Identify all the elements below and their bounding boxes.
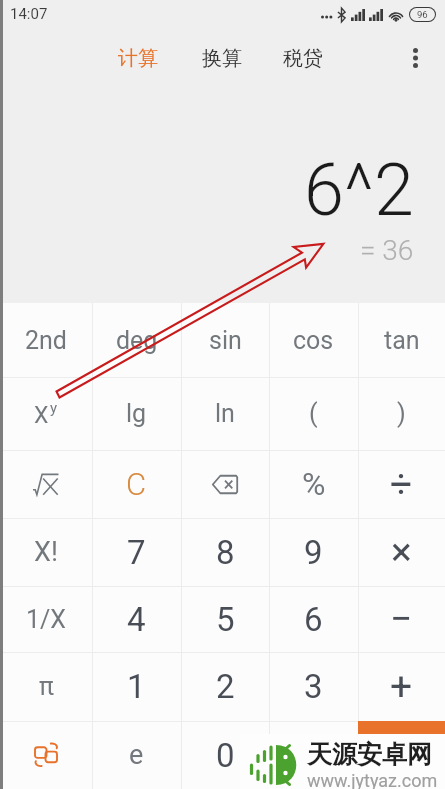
staticText: 7 — [127, 533, 146, 572]
staticText: × — [391, 529, 412, 575]
button[interactable]: 3 — [269, 652, 358, 721]
button[interactable]: cos — [269, 303, 358, 377]
staticText: 1/X — [26, 605, 67, 634]
button[interactable]: ÷ — [358, 450, 445, 518]
staticText: − — [390, 596, 413, 642]
button[interactable]: 换算 — [195, 37, 249, 80]
staticText: 税贷 — [283, 46, 323, 71]
staticText: y — [50, 399, 58, 417]
staticText: π — [39, 672, 54, 701]
staticText: 1 — [127, 667, 146, 706]
button[interactable]: tan — [358, 303, 445, 377]
staticText: 2 — [216, 667, 235, 706]
staticText: 6 — [304, 600, 323, 639]
button[interactable]: X! — [0, 518, 92, 586]
button[interactable]: 1 — [92, 652, 181, 721]
button[interactable]: 1/X — [0, 586, 92, 652]
staticText: tan — [384, 326, 420, 355]
button[interactable]: π — [0, 652, 92, 721]
button[interactable]: e — [92, 721, 181, 789]
staticText: 6^2 — [304, 148, 414, 232]
button[interactable]: 税贷 — [276, 37, 330, 80]
button[interactable]: 2nd — [0, 303, 92, 377]
button[interactable]: More options — [391, 34, 439, 82]
staticText: 8 — [216, 533, 235, 572]
button[interactable]: 8 — [181, 518, 269, 586]
staticText: X! — [34, 536, 58, 568]
button[interactable]: 9 — [269, 518, 358, 586]
button[interactable]: ln — [181, 377, 269, 450]
button[interactable]: lg — [92, 377, 181, 450]
staticText: www.jytyaz.com — [307, 770, 438, 789]
button[interactable]: + — [358, 652, 445, 721]
staticText: 3 — [304, 667, 323, 706]
staticText: e — [129, 739, 144, 771]
staticText: ÷ — [390, 461, 413, 507]
staticText: cos — [293, 326, 334, 355]
button[interactable]: 7 — [92, 518, 181, 586]
staticText: 9 — [304, 533, 323, 572]
button[interactable]: sin — [181, 303, 269, 377]
staticText: % — [302, 465, 326, 503]
button[interactable]: . — [269, 721, 358, 789]
button[interactable]: ( — [269, 377, 358, 450]
button[interactable]: × — [358, 518, 445, 586]
staticText: = — [393, 736, 411, 774]
button[interactable]: 5 — [181, 586, 269, 652]
button[interactable]: = — [358, 721, 445, 789]
button[interactable]: deg — [92, 303, 181, 377]
button[interactable]: 计算 — [111, 37, 165, 80]
button[interactable]: ) — [358, 377, 445, 450]
staticText: + — [390, 664, 413, 710]
staticText: sin — [209, 326, 242, 355]
button[interactable]: X — [0, 377, 92, 450]
button[interactable]: % — [269, 450, 358, 518]
staticText: . — [309, 736, 318, 775]
staticText: ( — [309, 399, 318, 428]
staticText: 0 — [216, 736, 235, 775]
staticText: 5 — [216, 600, 235, 639]
button[interactable]: 4 — [92, 586, 181, 652]
staticText: 14:07 — [10, 5, 48, 23]
button[interactable]: 0 — [181, 721, 269, 789]
button[interactable] — [0, 721, 92, 789]
button[interactable]: − — [358, 586, 445, 652]
staticText: deg — [116, 326, 158, 355]
staticText: 换算 — [202, 46, 242, 71]
staticText: X — [34, 402, 49, 426]
staticText: C — [126, 466, 147, 502]
staticText: 天源安卓网 — [307, 739, 432, 770]
staticText: lg — [126, 399, 147, 428]
button[interactable]: C — [92, 450, 181, 518]
staticText: 计算 — [118, 46, 158, 71]
staticText: ln — [215, 399, 235, 428]
staticText: = 36 — [360, 234, 414, 267]
staticText: 2nd — [25, 326, 67, 355]
staticText: 4 — [127, 600, 146, 639]
button[interactable] — [181, 450, 269, 518]
staticText: 96 — [417, 9, 428, 20]
button[interactable]: 6 — [269, 586, 358, 652]
button[interactable]: 2 — [181, 652, 269, 721]
staticText: ) — [397, 399, 406, 428]
button[interactable] — [0, 450, 92, 518]
